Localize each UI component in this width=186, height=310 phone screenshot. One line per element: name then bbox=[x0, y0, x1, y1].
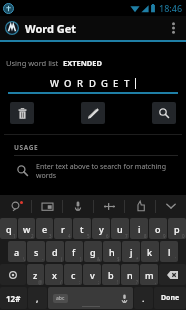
staticText: 7 bbox=[125, 233, 128, 239]
button[interactable]: r bbox=[54, 218, 72, 239]
staticText: / bbox=[60, 279, 62, 285]
staticText: ( bbox=[61, 256, 63, 262]
button[interactable]: e bbox=[36, 218, 53, 239]
staticText: g bbox=[90, 246, 96, 258]
staticText: O bbox=[64, 77, 72, 90]
button[interactable]: Text editing bbox=[94, 195, 124, 217]
staticText: EXTENDED bbox=[63, 58, 103, 68]
staticText: 3 bbox=[49, 233, 52, 239]
staticText: o bbox=[155, 223, 161, 235]
staticText: c bbox=[71, 269, 76, 281]
staticText: W bbox=[50, 77, 59, 90]
button[interactable]: c bbox=[64, 264, 82, 285]
staticText: T bbox=[124, 77, 130, 90]
button[interactable]: Backspace bbox=[159, 264, 186, 285]
button[interactable]: g bbox=[84, 241, 102, 262]
button[interactable]: b bbox=[102, 264, 120, 285]
staticText: 2 bbox=[31, 233, 34, 239]
staticText: abc bbox=[56, 295, 65, 302]
staticText: ' bbox=[175, 256, 177, 262]
staticText: & bbox=[97, 256, 101, 262]
button[interactable]: Emoji bbox=[0, 195, 31, 217]
staticText: USAGE bbox=[14, 143, 39, 152]
button[interactable]: Handwriting bbox=[125, 195, 155, 217]
staticText: l bbox=[168, 246, 171, 258]
staticText: , bbox=[36, 292, 39, 304]
staticText: b bbox=[108, 269, 114, 281]
staticText: v bbox=[90, 269, 95, 281]
staticText: - bbox=[42, 256, 44, 262]
button[interactable]: s bbox=[27, 241, 45, 262]
button[interactable]: h bbox=[103, 241, 121, 262]
button[interactable]: a bbox=[8, 241, 26, 262]
staticText: . bbox=[142, 292, 145, 304]
staticText: 0 bbox=[182, 233, 185, 239]
staticText: 6 bbox=[106, 233, 109, 239]
button[interactable]: p bbox=[168, 218, 186, 239]
button[interactable]: k bbox=[141, 241, 159, 262]
staticText: Using word list bbox=[6, 58, 59, 68]
staticText: t bbox=[80, 223, 84, 235]
staticText: n bbox=[127, 269, 133, 281]
button[interactable]: w bbox=[18, 218, 35, 239]
staticText: 8 bbox=[144, 233, 147, 239]
staticText: . bbox=[156, 256, 158, 262]
button[interactable]: i bbox=[130, 218, 148, 239]
staticText: G bbox=[101, 77, 108, 90]
staticText: x bbox=[52, 269, 57, 281]
staticText: \ bbox=[23, 256, 25, 262]
button[interactable]: z bbox=[27, 264, 44, 285]
button[interactable]: Done bbox=[154, 287, 186, 309]
button[interactable]: 12# bbox=[0, 287, 27, 309]
button[interactable]: Clipboard bbox=[32, 195, 62, 217]
staticText: ; bbox=[98, 279, 100, 285]
staticText: 12# bbox=[6, 293, 21, 304]
button[interactable]: l bbox=[160, 241, 178, 262]
staticText: d bbox=[52, 246, 58, 258]
staticText: s bbox=[34, 246, 39, 258]
staticText: i bbox=[138, 223, 141, 235]
staticText: 5 bbox=[87, 233, 90, 239]
button[interactable]: Comma bbox=[28, 287, 47, 309]
button[interactable]: Hide keyboard bbox=[156, 195, 186, 217]
staticText: k bbox=[147, 246, 153, 258]
staticText: 4 bbox=[68, 233, 71, 239]
staticText: ) bbox=[80, 256, 82, 262]
staticText: j bbox=[130, 246, 133, 258]
button[interactable]: Voice input bbox=[63, 195, 93, 217]
button[interactable]: u bbox=[111, 218, 129, 239]
staticText: Enter text above to search for matching … bbox=[36, 162, 178, 180]
button[interactable]: n bbox=[121, 264, 139, 285]
staticText: @ bbox=[38, 279, 43, 285]
button[interactable]: f bbox=[65, 241, 83, 262]
staticText: e bbox=[42, 223, 48, 235]
button[interactable]: Edit bbox=[81, 102, 105, 124]
button[interactable]: Search bbox=[152, 102, 176, 124]
staticText: y bbox=[99, 223, 104, 235]
staticText: p bbox=[174, 223, 180, 235]
button[interactable]: j bbox=[122, 241, 140, 262]
button[interactable]: Shift bbox=[0, 264, 26, 285]
button[interactable]: d bbox=[46, 241, 64, 262]
button[interactable]: Space bbox=[48, 287, 133, 309]
staticText: ! bbox=[117, 279, 119, 285]
button[interactable]: W bbox=[8, 76, 178, 94]
staticText: $ bbox=[117, 256, 120, 262]
button[interactable]: q bbox=[0, 218, 17, 239]
button[interactable]: x bbox=[45, 264, 63, 285]
button[interactable]: Clear bbox=[10, 102, 34, 124]
button[interactable]: More options bbox=[162, 16, 184, 40]
button[interactable]: y bbox=[92, 218, 110, 239]
staticText: h bbox=[109, 246, 115, 258]
staticText: r bbox=[61, 223, 65, 235]
staticText: 1 bbox=[13, 233, 16, 239]
staticText: E bbox=[113, 77, 119, 90]
button[interactable]: t bbox=[73, 218, 91, 239]
button[interactable]: o bbox=[149, 218, 167, 239]
button[interactable]: Period bbox=[134, 287, 153, 309]
button[interactable]: v bbox=[83, 264, 101, 285]
staticText: u bbox=[117, 223, 123, 235]
staticText: Done bbox=[161, 293, 180, 303]
button[interactable]: m bbox=[140, 264, 158, 285]
staticText: z bbox=[33, 269, 38, 281]
